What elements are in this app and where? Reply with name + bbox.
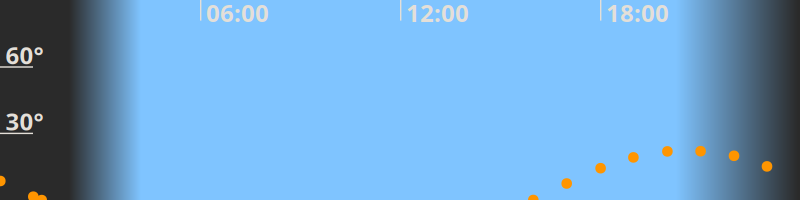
staticText: 06:00	[206, 0, 269, 29]
staticText: 18:00	[606, 0, 669, 29]
staticText: 60°	[5, 39, 43, 71]
staticText: 12:00	[406, 0, 469, 29]
staticText: 30°	[5, 105, 43, 137]
